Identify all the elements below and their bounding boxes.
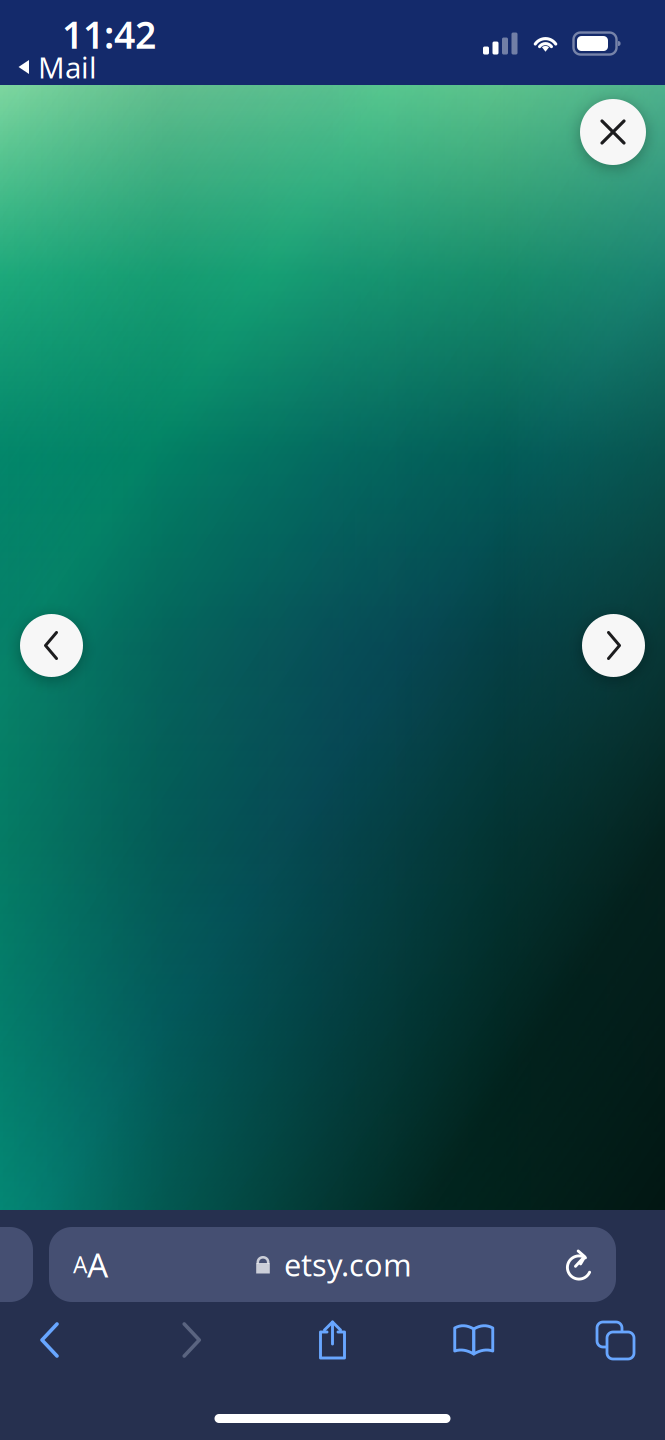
button[interactable]: Back	[0, 1310, 100, 1370]
button[interactable]: Forward	[141, 1310, 241, 1370]
button[interactable]: Share	[282, 1310, 382, 1370]
button[interactable]: Next	[582, 614, 645, 677]
staticText: A	[87, 1242, 108, 1287]
button[interactable]: Tabs	[565, 1310, 665, 1370]
button[interactable]: Previous	[20, 614, 83, 677]
staticText: 11:42	[62, 9, 156, 59]
button[interactable]: A	[49, 1227, 616, 1302]
staticText: etsy.com	[284, 1244, 412, 1285]
button[interactable]: Close	[580, 99, 646, 165]
button[interactable]: Bookmarks	[424, 1310, 524, 1370]
button[interactable]: Back to Mail	[0, 44, 97, 89]
staticText: Mail	[38, 47, 97, 86]
staticText: A	[73, 1249, 87, 1279]
